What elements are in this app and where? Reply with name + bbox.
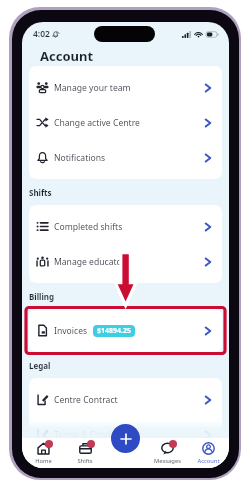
staticText: Terms & Conditions [54, 429, 133, 441]
staticText: Billing [29, 291, 55, 302]
button[interactable]: Terms & Conditions [29, 417, 222, 452]
button[interactable]: Messages [147, 438, 188, 465]
staticText: Home [35, 457, 52, 465]
staticText: Messages [154, 457, 181, 465]
button[interactable]: Add [111, 424, 140, 453]
staticText: Centre Contract [54, 394, 118, 406]
staticText: $14894.25 [97, 326, 131, 336]
staticText: Change active Centre [54, 117, 140, 129]
staticText: Account [40, 47, 94, 65]
button[interactable]: Centre Contract [29, 382, 222, 417]
button[interactable]: Shifts [64, 438, 106, 465]
staticText: Notifications [54, 152, 106, 164]
button[interactable]: Notifications [29, 140, 222, 175]
staticText: 4:02 [33, 28, 50, 40]
staticText: Account [197, 457, 220, 465]
staticText: Manage your team [54, 82, 131, 94]
staticText: Manage educators [54, 256, 130, 268]
staticText: Shifts [77, 457, 93, 465]
button[interactable]: Account [188, 438, 229, 465]
button[interactable]: Manage your team [29, 70, 222, 105]
button[interactable]: Home [22, 438, 64, 465]
button[interactable]: Manage educators [29, 244, 222, 279]
staticText: Completed shifts [54, 221, 123, 233]
staticText: Shifts [29, 187, 52, 198]
staticText: Legal [29, 360, 51, 371]
button[interactable]: Completed shifts [29, 209, 222, 244]
button[interactable]: Invoices [29, 313, 222, 348]
staticText: Invoices [54, 325, 88, 337]
button[interactable]: Change active Centre [29, 105, 222, 140]
